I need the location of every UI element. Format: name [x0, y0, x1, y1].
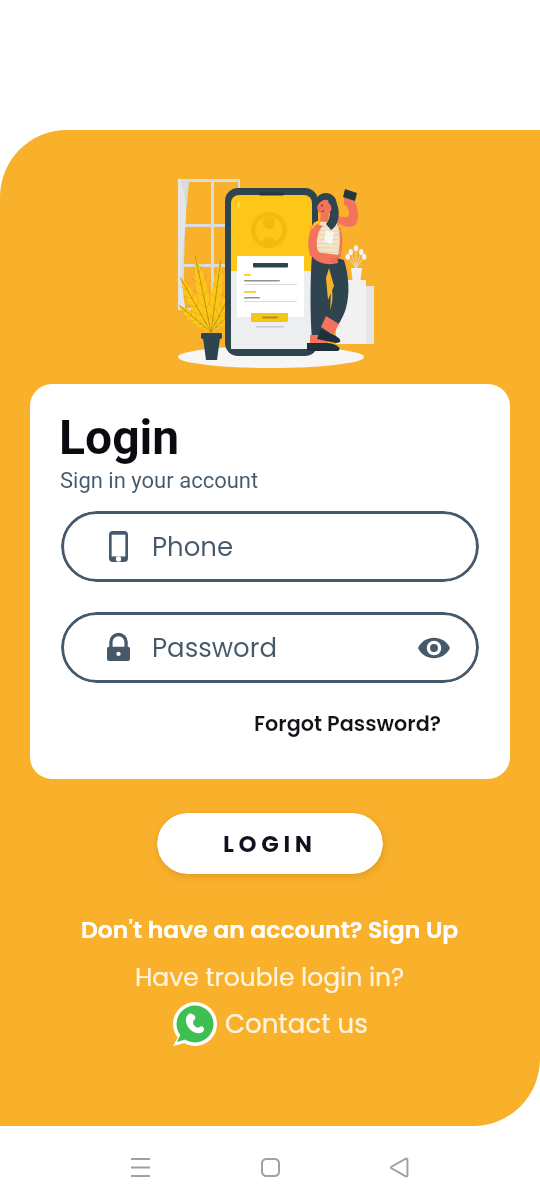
staticText: LOGIN: [223, 828, 317, 860]
button[interactable]: Home: [248, 1145, 292, 1189]
button[interactable]: Contact us: [173, 1002, 368, 1046]
button[interactable]: LOGIN: [157, 813, 383, 874]
staticText: Contact us: [225, 1006, 368, 1042]
staticText: Login: [59, 409, 180, 465]
button[interactable]: Forgot Password?: [254, 709, 442, 738]
button[interactable]: Have trouble login in?: [135, 960, 405, 995]
button[interactable]: Recent apps: [118, 1145, 162, 1189]
staticText: Sign in your account: [60, 468, 259, 494]
button[interactable]: Back: [377, 1145, 421, 1189]
staticText: Password: [152, 630, 278, 666]
button[interactable]: Password: [61, 612, 479, 683]
button[interactable]: Don't have an account? Sign Up: [81, 913, 459, 946]
button[interactable]: Phone: [61, 511, 479, 582]
staticText: Phone: [152, 529, 234, 565]
